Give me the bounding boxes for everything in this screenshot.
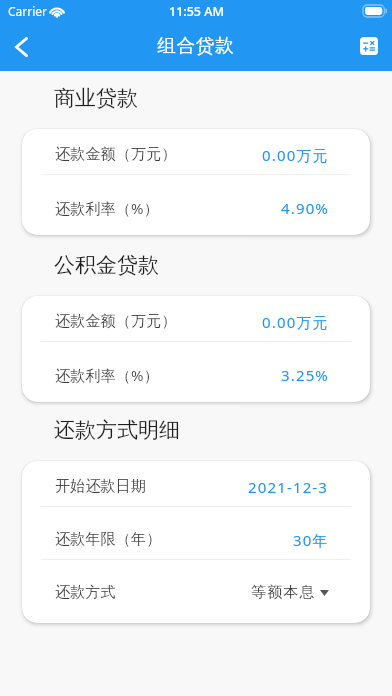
staticText: 还款金额（万元） — [55, 312, 177, 331]
staticText: Carrier — [8, 3, 48, 19]
staticText: 还款方式明细 — [54, 417, 180, 443]
staticText: 还款方式 — [55, 583, 116, 602]
staticText: 还款利率（%） — [55, 198, 159, 218]
staticText: 0.00万元 — [262, 312, 329, 332]
button[interactable]: 还款利率（%） — [22, 182, 370, 235]
staticText: 商业贷款 — [54, 85, 138, 111]
button[interactable]: Calculator — [354, 22, 392, 71]
button[interactable]: 开始还款日期 — [22, 461, 370, 514]
staticText: 3.25% — [281, 365, 329, 385]
button[interactable]: 还款利率（%） — [22, 349, 370, 402]
staticText: 组合贷款 — [157, 34, 235, 57]
staticText: 11:55 AM — [169, 3, 224, 20]
staticText: 2021-12-3 — [248, 477, 329, 497]
button[interactable]: 还款年限（年） — [22, 514, 370, 567]
staticText: 30年 — [293, 530, 329, 550]
button[interactable]: 还款方式 — [22, 567, 370, 620]
button[interactable]: 还款金额（万元） — [22, 296, 370, 349]
staticText: 开始还款日期 — [55, 477, 147, 496]
staticText: 公积金贷款 — [54, 252, 159, 278]
staticText: 0.00万元 — [262, 145, 329, 165]
button[interactable]: 还款金额（万元） — [22, 129, 370, 182]
staticText: 还款金额（万元） — [55, 145, 177, 164]
staticText: 还款利率（%） — [55, 365, 159, 385]
staticText: 等额本息 — [251, 583, 316, 602]
button[interactable]: Back — [0, 22, 46, 71]
staticText: 还款年限（年） — [55, 530, 162, 549]
staticText: 4.90% — [281, 198, 329, 218]
